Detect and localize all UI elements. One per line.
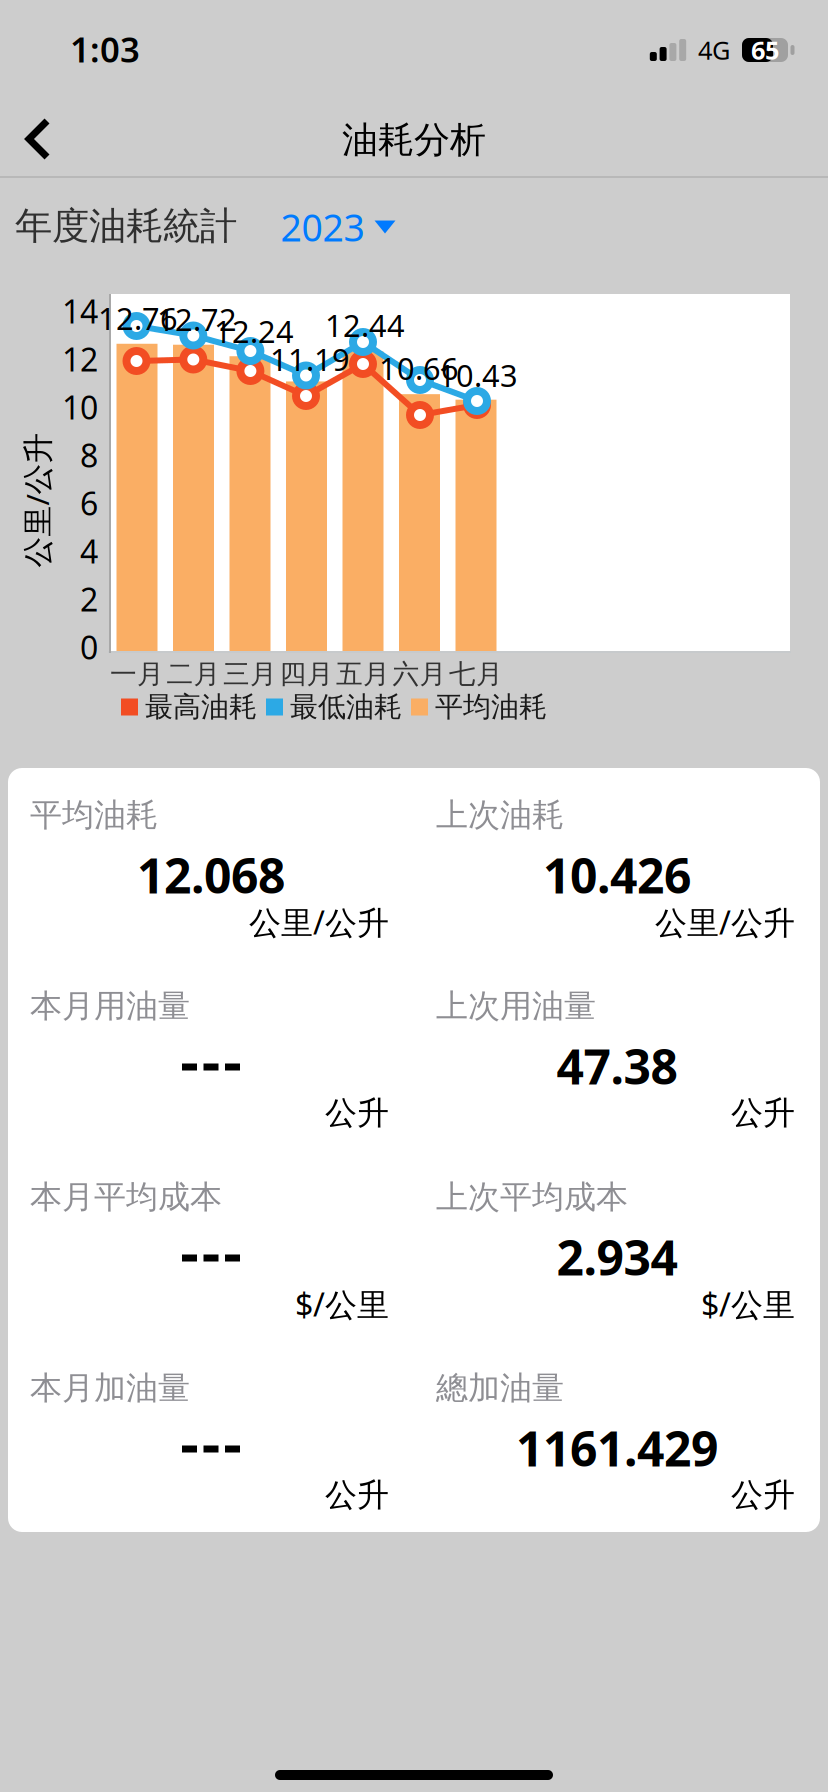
staticText: 0 — [80, 626, 98, 668]
staticText: 二月 — [166, 658, 220, 690]
staticText: 1:03 — [70, 26, 140, 72]
staticText: 年度油耗統計 — [15, 203, 237, 249]
staticText: 平均油耗 — [30, 795, 158, 835]
staticText: 油耗分析 — [342, 118, 486, 162]
staticText: 47.38 — [556, 1034, 677, 1098]
staticText: 12.24 — [214, 311, 294, 351]
staticText: 本月加油量 — [30, 1368, 190, 1408]
staticText: 公里/公升 — [249, 901, 389, 943]
staticText: 11.19 — [270, 339, 350, 379]
staticText: 七月 — [449, 658, 503, 690]
staticText: 一月 — [110, 658, 164, 690]
button[interactable]: 2023 — [280, 202, 395, 252]
staticText: 2 — [80, 578, 98, 620]
staticText: 4 — [80, 530, 98, 572]
staticText: 六月 — [392, 658, 446, 690]
staticText: 10 — [62, 386, 98, 428]
staticText: 上次用油量 — [436, 986, 596, 1026]
staticText: 4G — [698, 33, 730, 67]
staticText: 公升 — [325, 1093, 389, 1133]
staticText: 公升 — [325, 1475, 389, 1515]
staticText: 1161.429 — [516, 1416, 718, 1480]
staticText: 公里/公升 — [0, 480, 104, 520]
staticText: 12.068 — [137, 843, 285, 907]
staticText: 12.72 — [157, 299, 237, 339]
staticText: 平均油耗 — [435, 690, 547, 724]
button[interactable]: Back — [25, 105, 51, 173]
staticText: 總加油量 — [436, 1368, 564, 1408]
staticText: 最低油耗 — [290, 690, 402, 724]
staticText: 2023 — [280, 202, 364, 252]
staticText: 12.76 — [98, 298, 178, 338]
staticText: 8 — [80, 434, 98, 476]
staticText: 12.44 — [325, 305, 405, 345]
staticText: 三月 — [223, 658, 277, 690]
staticText: 10.43 — [438, 355, 518, 395]
staticText: 6 — [80, 482, 98, 524]
staticText: 本月平均成本 — [30, 1177, 222, 1217]
staticText: 12 — [62, 338, 98, 380]
staticText: 最高油耗 — [145, 690, 257, 724]
staticText: 上次平均成本 — [436, 1177, 628, 1217]
staticText: 四月 — [279, 658, 333, 690]
staticText: $/公里 — [701, 1283, 795, 1325]
staticText: 五月 — [336, 658, 390, 690]
staticText: $/公里 — [295, 1283, 389, 1325]
staticText: 10.66 — [379, 348, 459, 388]
staticText: 14 — [62, 290, 98, 332]
staticText: 10.426 — [543, 843, 691, 907]
staticText: 本月用油量 — [30, 986, 190, 1026]
staticText: 公里/公升 — [655, 901, 795, 943]
staticText: 上次油耗 — [436, 795, 564, 835]
staticText: 65 — [751, 33, 779, 67]
staticText: 2.934 — [556, 1225, 677, 1289]
staticText: 公升 — [731, 1093, 795, 1133]
staticText: 公升 — [731, 1475, 795, 1515]
